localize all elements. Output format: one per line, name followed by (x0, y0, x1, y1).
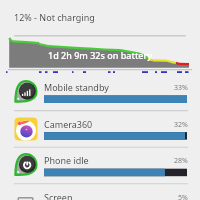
staticText: 32% (174, 120, 188, 130)
staticText: Mobile standby (44, 81, 109, 93)
staticText: Screen (44, 191, 73, 200)
staticText: Camera360 (44, 118, 93, 130)
staticText: 33% (174, 83, 188, 93)
button[interactable]: Mobile standby (0, 74, 200, 111)
staticText: Phone idle (44, 154, 89, 166)
staticText: 1d 2h 9m 32s on battery (48, 49, 153, 61)
staticText: 5% (178, 193, 188, 200)
staticText: 12% - Not charging (14, 11, 95, 23)
button[interactable]: Phone idle (0, 147, 200, 184)
button[interactable]: Screen (0, 184, 200, 200)
button[interactable]: Camera360 (0, 111, 200, 148)
staticText: 28% (174, 156, 188, 166)
